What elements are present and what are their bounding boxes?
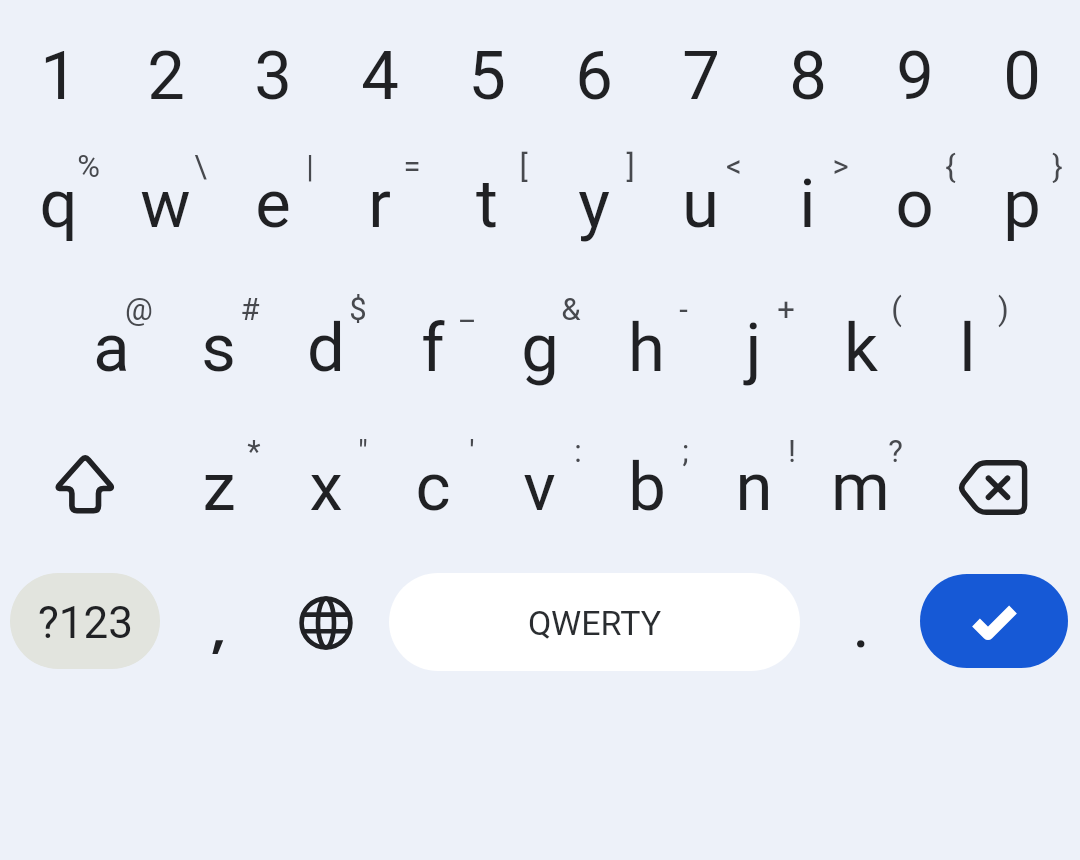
button[interactable]: QWERTY [389,573,800,671]
button[interactable]: g [486,279,593,417]
staticText: ) [998,291,1009,327]
button[interactable]: p [968,135,1075,273]
button[interactable]: y [540,135,647,273]
button[interactable]: 6 [540,16,647,136]
button[interactable]: o [861,135,968,273]
staticText: c [415,448,451,527]
staticText: @ [125,291,153,327]
staticText: 9 [896,37,934,116]
staticText: % [77,148,100,184]
button[interactable]: d [272,279,379,417]
staticText: 1 [40,37,78,116]
button[interactable]: u [647,135,754,273]
staticText: 3 [254,37,292,116]
button[interactable]: 3 [219,16,326,136]
staticText: i [799,165,816,244]
button[interactable]: s [165,279,272,417]
staticText: v [523,448,556,527]
button[interactable]: f [379,279,486,417]
button[interactable]: . [807,569,914,679]
staticText: - [679,291,688,327]
button[interactable]: b [593,418,700,556]
button[interactable]: x [272,418,379,556]
staticText: > [832,148,849,184]
staticText: 4 [361,37,399,116]
button[interactable]: 2 [112,16,219,136]
staticText: r [368,165,391,244]
button[interactable]: v [486,418,593,556]
button[interactable] [272,570,379,675]
staticText: x [309,448,343,527]
staticText: n [735,448,773,527]
staticText: ; [682,433,689,469]
staticText: d [307,309,345,388]
staticText: ' [469,433,475,469]
staticText: f [421,309,445,388]
staticText: } [1052,148,1063,184]
button[interactable]: t [433,135,540,273]
staticText: 5 [468,37,506,116]
staticText: l [959,309,976,388]
staticText: k [844,309,878,388]
button[interactable]: a [58,279,165,417]
button[interactable] [920,574,1068,668]
staticText: t [476,165,498,244]
staticText: u [682,165,719,244]
staticText: $ [349,291,367,327]
staticText: g [521,309,559,388]
button[interactable]: w [112,135,219,273]
button[interactable]: h [593,279,700,417]
staticText: = [403,148,421,184]
staticText: QWERTY [528,603,662,643]
button[interactable]: 1 [5,16,112,136]
button[interactable]: 8 [754,16,861,136]
button[interactable]: i [754,135,861,273]
staticText: < [726,148,742,184]
button[interactable]: e [219,135,326,273]
staticText: 8 [789,37,827,116]
staticText: ] [626,148,635,184]
button[interactable] [25,423,145,551]
staticText: b [628,448,666,527]
button[interactable]: 7 [647,16,754,136]
staticText: ! [788,433,796,469]
staticText: ? [888,433,903,469]
button[interactable]: j [700,279,807,417]
button[interactable]: 0 [968,16,1075,136]
button[interactable]: z [165,418,272,556]
staticText: 6 [575,37,613,116]
button[interactable]: m [807,418,914,556]
button[interactable]: n [700,418,807,556]
button[interactable]: q [5,135,112,273]
staticText: q [39,165,78,244]
staticText: o [895,165,934,244]
staticText: _ [460,291,474,327]
button[interactable]: l [914,279,1021,417]
staticText: a [93,309,130,388]
staticText: j [745,309,762,388]
staticText: [ [519,148,528,184]
staticText: w [140,165,191,244]
button[interactable] [166,570,273,675]
staticText: : [574,433,582,469]
staticText: . [852,585,870,664]
staticText: { [945,148,956,184]
button[interactable]: c [379,418,486,556]
button[interactable]: r [326,135,433,273]
staticText: h [628,309,665,388]
button[interactable]: ?123 [10,573,160,669]
button[interactable]: 9 [861,16,968,136]
staticText: 2 [147,37,185,116]
staticText: z [202,448,236,527]
staticText: & [561,291,581,327]
button[interactable]: 4 [326,16,433,136]
staticText: s [201,309,236,388]
staticText: # [240,291,260,327]
staticText: | [306,148,314,184]
button[interactable] [932,423,1052,551]
staticText: 7 [682,37,720,116]
button[interactable]: k [807,279,914,417]
staticText: m [831,448,890,527]
staticText: ( [891,291,902,327]
button[interactable]: 5 [433,16,540,136]
